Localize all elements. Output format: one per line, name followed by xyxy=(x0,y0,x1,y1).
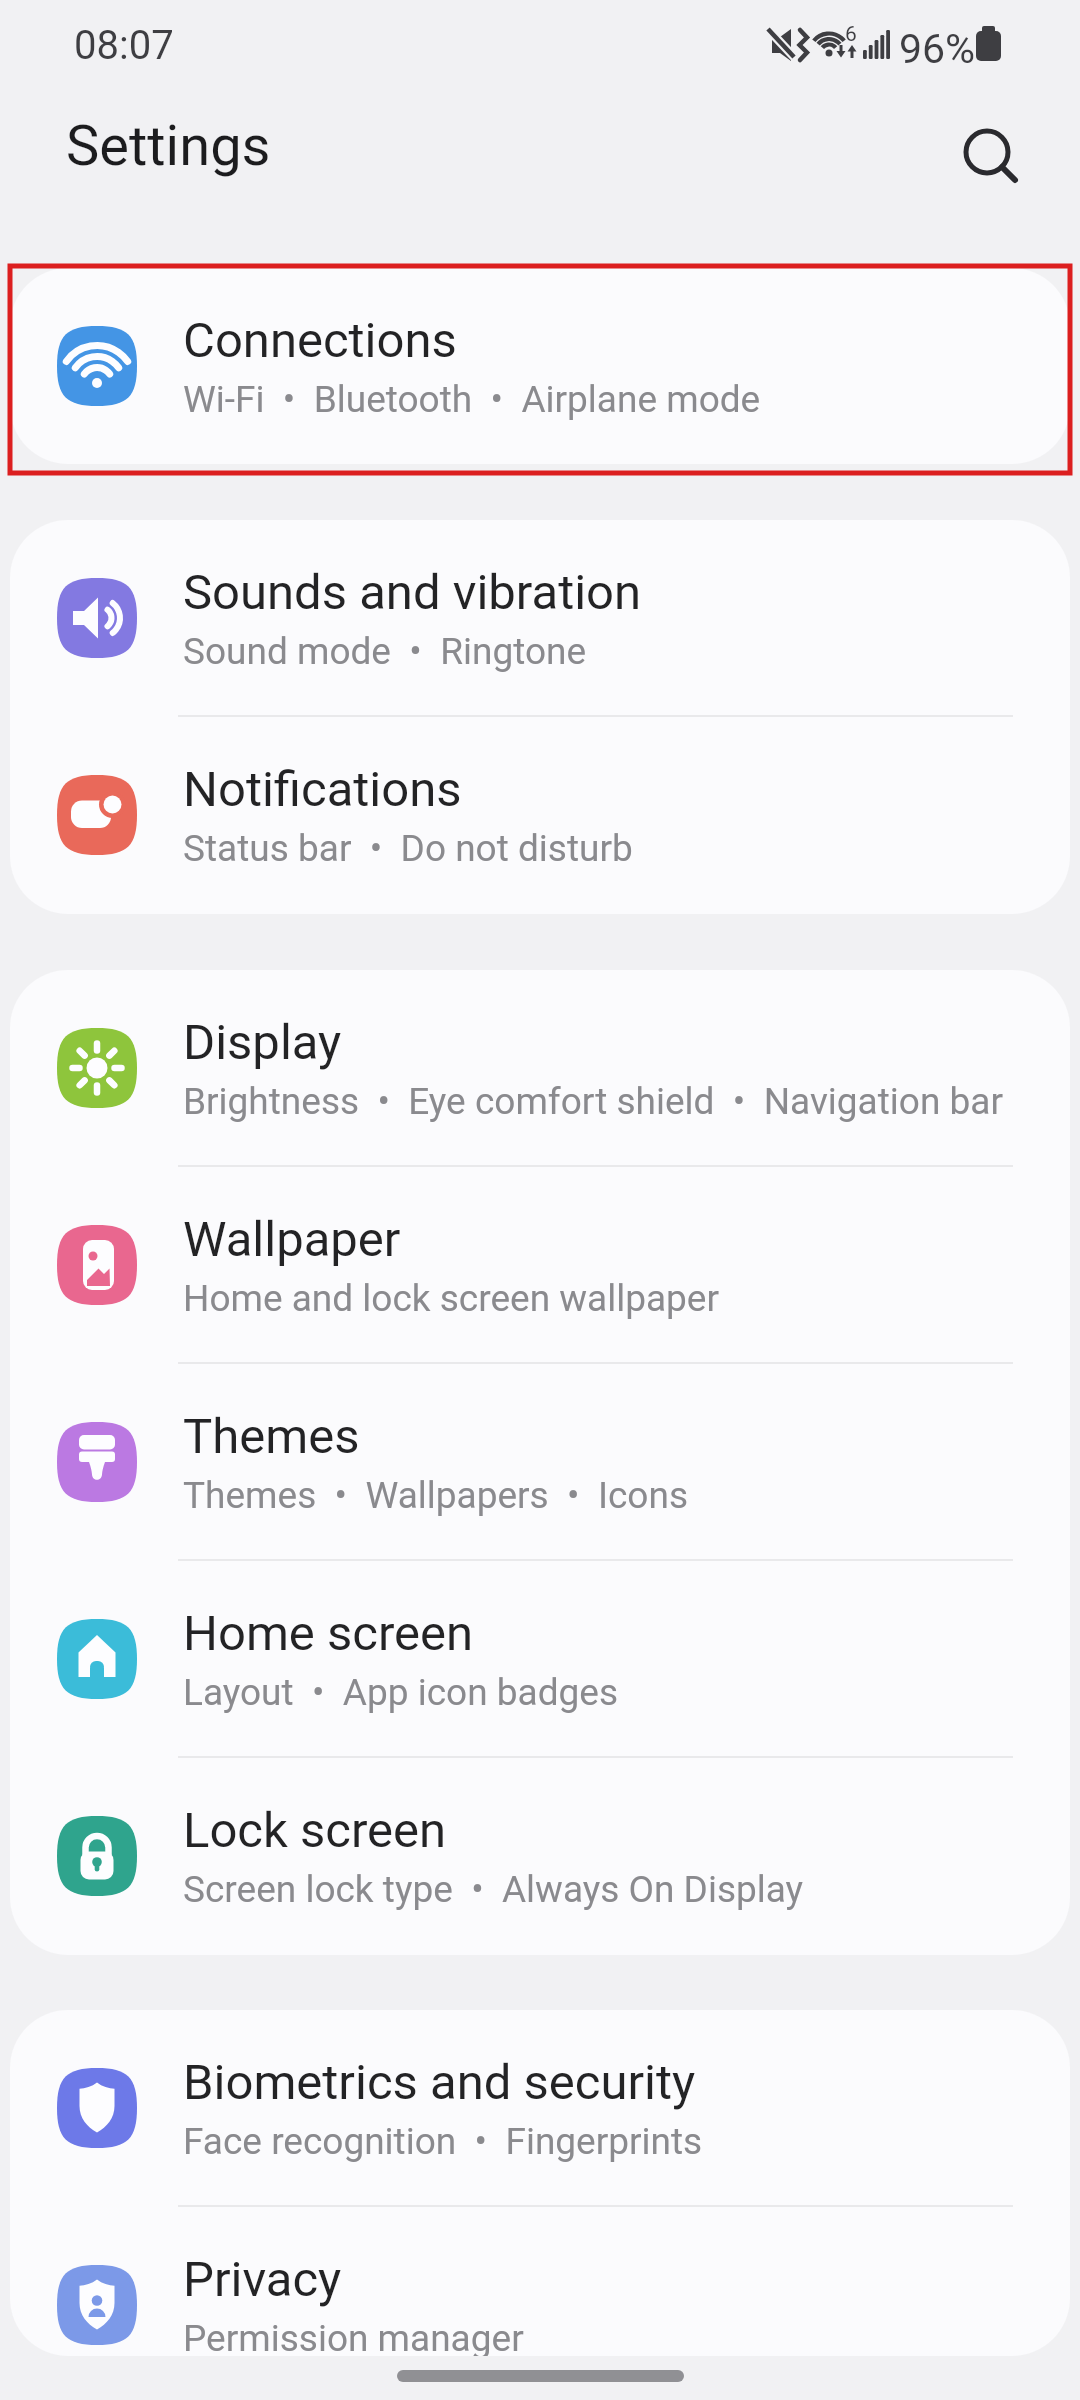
staticText: Privacy xyxy=(183,2251,342,2308)
button[interactable]: Wallpaper xyxy=(10,1167,1070,1364)
staticText: Face recognition • Fingerprints xyxy=(183,2120,703,2163)
button[interactable] xyxy=(397,2370,684,2382)
button[interactable]: Home screen xyxy=(10,1561,1070,1758)
button[interactable]: Connections xyxy=(10,268,1070,464)
staticText: Home and lock screen wallpaper xyxy=(183,1277,720,1320)
staticText: 08:07 xyxy=(74,22,174,69)
staticText: Brightness • Eye comfort shield • Naviga… xyxy=(183,1080,1003,1123)
staticText: Settings xyxy=(66,113,271,179)
staticText: Connections xyxy=(183,312,457,369)
staticText: Layout • App icon badges xyxy=(183,1671,619,1714)
staticText: Sound mode • Ringtone xyxy=(183,630,587,673)
button[interactable]: Lock screen xyxy=(10,1758,1070,1955)
staticText: Notifications xyxy=(183,761,462,818)
staticText: Sounds and vibration xyxy=(183,564,642,621)
staticText: Display xyxy=(183,1014,342,1071)
button[interactable] xyxy=(946,112,1026,192)
staticText: Themes • Wallpapers • Icons xyxy=(183,1474,688,1517)
staticText: Lock screen xyxy=(183,1802,447,1859)
button[interactable]: Display xyxy=(10,970,1070,1167)
button[interactable]: Biometrics and security xyxy=(10,2010,1070,2207)
staticText: Home screen xyxy=(183,1605,474,1662)
staticText: Themes xyxy=(183,1408,360,1465)
button[interactable]: Themes xyxy=(10,1364,1070,1561)
staticText: 6 xyxy=(845,22,857,47)
staticText: Wallpaper xyxy=(183,1211,401,1268)
button[interactable]: Privacy xyxy=(10,2207,1070,2356)
staticText: Permission manager xyxy=(183,2317,524,2356)
button[interactable]: Notifications xyxy=(10,717,1070,914)
staticText: Biometrics and security xyxy=(183,2054,696,2111)
staticText: Wi-Fi • Bluetooth • Airplane mode xyxy=(183,378,761,421)
staticText: Status bar • Do not disturb xyxy=(183,827,633,870)
staticText: 96% xyxy=(899,25,976,73)
staticText: Screen lock type • Always On Display xyxy=(183,1868,804,1911)
button[interactable]: Sounds and vibration xyxy=(10,520,1070,717)
